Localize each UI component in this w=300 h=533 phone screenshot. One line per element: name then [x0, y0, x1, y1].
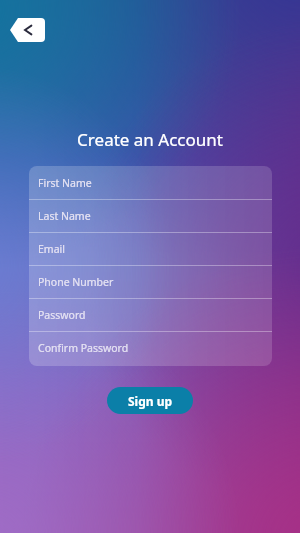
staticText: Phone Number — [38, 275, 114, 289]
staticText: Email — [38, 242, 65, 256]
staticText: Last Name — [38, 209, 91, 223]
staticText: Create an Account — [0, 128, 300, 151]
button[interactable]: Email — [29, 232, 272, 265]
staticText: First Name — [38, 176, 92, 190]
button[interactable]: Sign up — [107, 387, 193, 414]
button[interactable]: Password — [29, 298, 272, 331]
button[interactable]: Confirm Password — [29, 331, 272, 364]
staticText: Confirm Password — [38, 341, 129, 355]
staticText: Password — [38, 308, 86, 322]
button[interactable]: Last Name — [29, 199, 272, 232]
button[interactable]: Phone Number — [29, 265, 272, 298]
staticText: Sign up — [128, 393, 173, 409]
button[interactable]: Back — [10, 18, 45, 42]
button[interactable]: First Name — [29, 166, 272, 199]
